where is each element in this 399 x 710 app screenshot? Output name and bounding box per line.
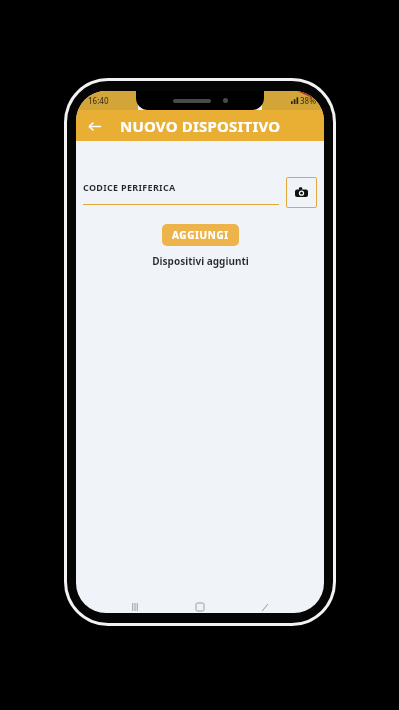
button[interactable]: Recents <box>129 601 141 613</box>
button[interactable]: CODICE PERIFERICA <box>83 181 279 205</box>
button[interactable]: Back <box>259 601 271 613</box>
button[interactable]: Home <box>194 601 206 613</box>
staticText: 38% <box>300 95 316 106</box>
staticText: CODICE PERIFERICA <box>83 181 176 193</box>
button[interactable]: Scan with camera <box>286 177 317 208</box>
button[interactable]: Back <box>82 114 106 138</box>
staticText: AGGIUNGI <box>172 228 229 242</box>
staticText: 16:40 <box>88 95 109 106</box>
staticText: NUOVO DISPOSITIVO <box>120 116 281 136</box>
staticText: Dispositivi aggiunti <box>152 254 249 268</box>
button[interactable]: AGGIUNGI <box>162 224 239 246</box>
